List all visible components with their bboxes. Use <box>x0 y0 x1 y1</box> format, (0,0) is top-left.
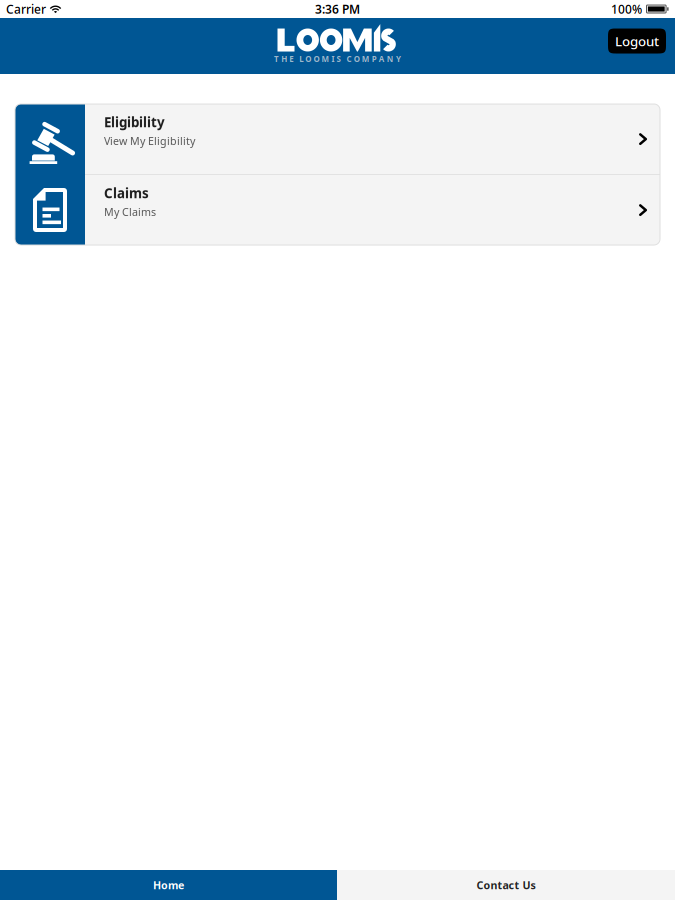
staticText: Claims <box>104 184 149 202</box>
staticText: My Claims <box>104 205 156 219</box>
button[interactable]: Home <box>0 870 337 900</box>
staticText: Eligibility <box>104 113 165 131</box>
button[interactable]: Claims <box>15 175 660 245</box>
staticText: THE LOOMIS COMPANY <box>274 54 401 64</box>
staticText: 3:36 PM <box>315 1 360 17</box>
staticText: Logout <box>615 32 659 50</box>
staticText: View My Eligibility <box>104 134 195 148</box>
button[interactable]: Eligibility <box>15 104 660 174</box>
staticText: Home <box>153 878 184 892</box>
staticText: 100% <box>611 1 642 17</box>
staticText: Carrier <box>6 1 46 17</box>
button[interactable]: Contact Us <box>337 870 675 900</box>
button[interactable]: Logout <box>608 28 666 53</box>
staticText: Contact Us <box>476 878 535 892</box>
